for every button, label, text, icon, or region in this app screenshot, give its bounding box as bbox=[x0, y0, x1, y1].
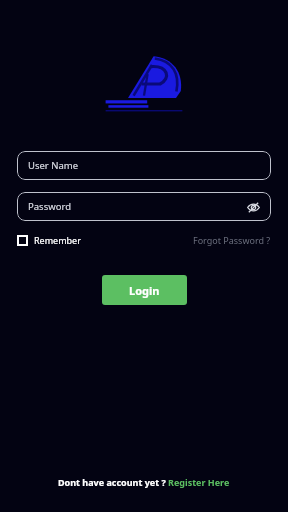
staticText: Password bbox=[28, 200, 71, 213]
button[interactable]: Forgot Password ? bbox=[193, 234, 271, 246]
staticText: Forgot Password ? bbox=[193, 234, 271, 246]
button[interactable]: Password bbox=[17, 192, 271, 221]
staticText: User Name bbox=[28, 159, 79, 172]
staticText: Remember bbox=[34, 234, 81, 246]
staticText: Login bbox=[129, 283, 160, 298]
button[interactable]: Show password bbox=[243, 197, 263, 217]
button[interactable]: Remember bbox=[17, 234, 81, 246]
button[interactable]: Dont have account yet ? Register Here bbox=[58, 476, 230, 488]
staticText: Dont have account yet ? Register Here bbox=[58, 476, 230, 488]
button[interactable]: Login bbox=[102, 275, 187, 305]
button[interactable]: User Name bbox=[17, 151, 271, 180]
